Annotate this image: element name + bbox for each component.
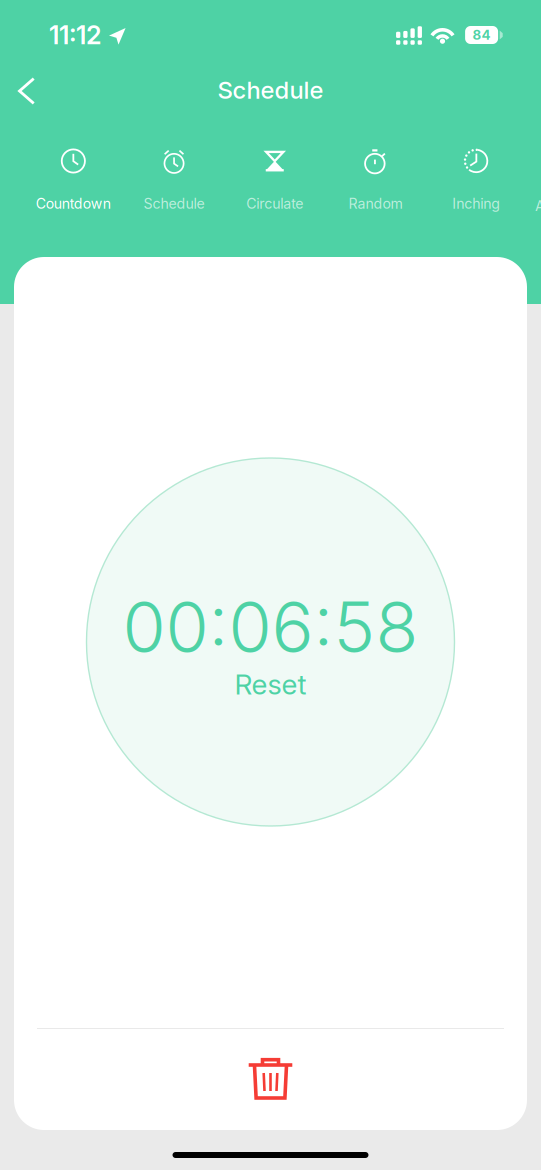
staticText: Reset	[234, 667, 306, 701]
button[interactable]: Countdown	[23, 125, 124, 220]
staticText: A	[535, 197, 541, 214]
staticText: 00:06:58	[122, 585, 418, 669]
staticText: 84	[473, 27, 491, 43]
button[interactable]: Circulate	[224, 125, 325, 220]
button[interactable]: Schedule	[124, 125, 224, 220]
button[interactable]: Random	[325, 125, 426, 220]
button[interactable]: Delete	[14, 1029, 527, 1130]
staticText: Schedule	[144, 195, 205, 212]
staticText: Random	[348, 195, 402, 212]
staticText: Inching	[452, 195, 500, 212]
staticText: Schedule	[217, 75, 323, 104]
staticText: 11:12	[49, 20, 102, 50]
staticText: Circulate	[246, 195, 303, 212]
button[interactable]: Back	[0, 66, 54, 116]
button[interactable]: Inching	[426, 125, 526, 220]
staticText: Countdown	[36, 195, 111, 212]
